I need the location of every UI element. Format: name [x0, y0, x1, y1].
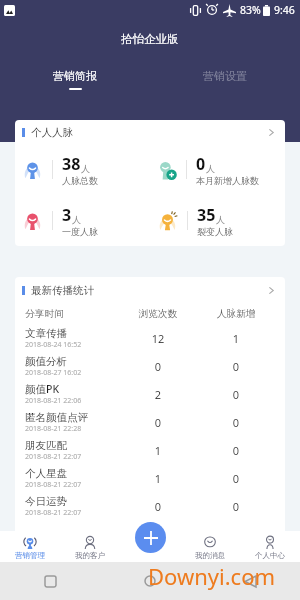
- staticText: 人脉新增: [197, 308, 275, 320]
- staticText: 0: [197, 415, 275, 430]
- button[interactable]: 营销简报: [0, 67, 150, 92]
- staticText: 0: [119, 499, 197, 514]
- staticText: 12: [119, 331, 197, 346]
- staticText: 裂变人脉: [197, 226, 233, 237]
- other: Home: [144, 575, 156, 587]
- staticText: 2018-08-27 16:02: [25, 368, 82, 378]
- staticText: 2018-08-21 22:07: [25, 452, 82, 462]
- staticText: 2018-08-21 22:07: [25, 508, 82, 518]
- staticText: 我的消息: [195, 551, 225, 560]
- staticText: 人脉总数: [62, 175, 98, 186]
- button[interactable]: Add: [135, 522, 166, 553]
- other: More: [266, 285, 277, 296]
- staticText: 文章传播: [25, 327, 67, 340]
- staticText: 0: [197, 387, 275, 402]
- staticText: Downyi.com: [148, 561, 276, 591]
- staticText: 营销设置: [203, 69, 247, 83]
- staticText: 营销管理: [15, 551, 45, 560]
- staticText: 35: [197, 204, 216, 226]
- staticText: 0: [197, 443, 275, 458]
- staticText: 0: [196, 153, 206, 175]
- staticText: 人: [216, 214, 225, 225]
- staticText: 0: [119, 359, 197, 374]
- staticText: 浏览次数: [119, 308, 197, 320]
- staticText: 2018-08-21 22:07: [25, 480, 82, 490]
- staticText: 拾怡企业版: [121, 32, 179, 46]
- button[interactable]: 我的客户: [60, 531, 120, 562]
- staticText: 0: [119, 415, 197, 430]
- staticText: 今日运势: [25, 495, 67, 508]
- button[interactable]: 颜值PK: [25, 380, 275, 408]
- button[interactable]: 个人星盘: [25, 464, 275, 492]
- staticText: 人: [72, 214, 81, 225]
- staticText: 个人中心: [255, 551, 285, 560]
- button[interactable]: 营销管理: [0, 531, 60, 562]
- button[interactable]: 匿名颜值点评: [25, 408, 275, 436]
- staticText: 3: [62, 204, 72, 226]
- staticText: 9:46: [274, 3, 295, 17]
- staticText: 0: [197, 499, 275, 514]
- staticText: 2: [119, 387, 197, 402]
- staticText: 2018-08-21 22:06: [25, 396, 82, 406]
- staticText: 83%: [240, 3, 261, 17]
- button[interactable]: 个人中心: [240, 531, 300, 562]
- staticText: 1: [119, 471, 197, 486]
- staticText: 匿名颜值点评: [25, 411, 88, 424]
- staticText: 2018-08-21 22:28: [25, 424, 82, 434]
- staticText: 最新传播统计: [31, 284, 94, 297]
- other: Recents: [45, 576, 56, 587]
- staticText: 2018-08-24 16:52: [25, 340, 82, 350]
- staticText: 0: [197, 359, 275, 374]
- button[interactable]: 个人人脉: [15, 120, 285, 246]
- staticText: 颜值分析: [25, 355, 67, 368]
- staticText: 1: [119, 443, 197, 458]
- button[interactable]: 文章传播: [25, 324, 275, 352]
- staticText: 0: [197, 471, 275, 486]
- staticText: 颜值PK: [25, 382, 60, 396]
- staticText: 分享时间: [25, 308, 119, 320]
- button[interactable]: 颜值分析: [25, 352, 275, 380]
- button[interactable]: 今日运势: [25, 492, 275, 520]
- button[interactable]: 营销设置: [150, 67, 300, 92]
- staticText: 营销简报: [53, 69, 97, 83]
- staticText: 朋友匹配: [25, 439, 67, 452]
- staticText: 个人人脉: [31, 126, 73, 139]
- other: More: [266, 127, 277, 138]
- staticText: 本月新增人脉数: [196, 175, 259, 186]
- button[interactable]: 朋友匹配: [25, 436, 275, 464]
- staticText: 38: [62, 153, 81, 175]
- staticText: 人: [81, 163, 90, 174]
- button[interactable]: 我的消息: [180, 531, 240, 562]
- other: Back: [245, 576, 256, 587]
- staticText: 个人星盘: [25, 467, 67, 480]
- staticText: 一度人脉: [62, 226, 98, 237]
- staticText: 人: [206, 163, 215, 174]
- staticText: 我的客户: [75, 551, 105, 560]
- staticText: 1: [197, 331, 275, 346]
